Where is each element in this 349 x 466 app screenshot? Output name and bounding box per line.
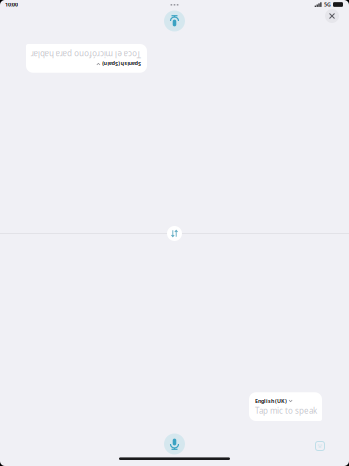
button[interactable]: Close (320, 4, 344, 28)
staticText: Spanish (Spain) (32, 49, 71, 56)
staticText: Toca el micrófono para hablar (32, 57, 142, 68)
button[interactable]: Microphone, English (160, 430, 188, 458)
button[interactable]: Microphone, Spanish (160, 7, 188, 35)
staticText: 10:00 (5, 1, 18, 8)
staticText: 5G (324, 1, 331, 8)
button[interactable]: Keyboard (309, 435, 331, 457)
staticText: Tap mic to speak (255, 405, 317, 416)
button[interactable]: Swap languages (161, 220, 187, 246)
staticText: English (UK) (255, 397, 287, 404)
